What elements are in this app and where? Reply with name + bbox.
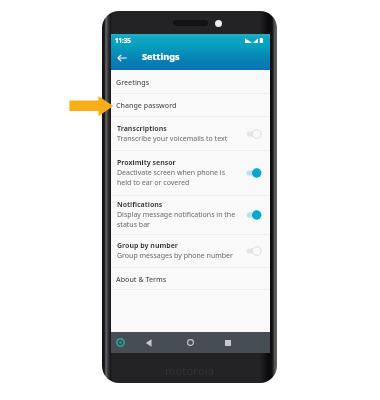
staticText: Group by number [117,241,178,251]
staticText: Settings [142,50,180,63]
staticText: Group messages by phone number [117,251,233,261]
staticText: Display message notifications in the [117,210,236,220]
staticText: About & Terms [116,274,167,284]
staticText: Change password [116,100,177,110]
staticText: Transcriptions [117,124,167,134]
button[interactable]: Back [115,51,128,64]
staticText: status bar [117,220,150,230]
staticText: 11:35 [115,36,131,44]
staticText: held to ear or covered [117,178,190,188]
staticText: Proximity sensor [117,158,176,168]
button[interactable]: Proximity sensor [111,151,270,196]
staticText: motorola [165,363,215,378]
button[interactable]: Notifications [111,196,270,235]
button[interactable]: Group by number [111,235,270,268]
button[interactable]: Home [181,332,199,353]
staticText: Transcribe your voicemails to text [117,134,228,144]
button[interactable]: Greetings [111,71,270,94]
button[interactable]: Transcriptions [111,117,270,151]
button[interactable]: Toggle [246,129,262,139]
button[interactable]: Toggle [246,168,262,178]
button[interactable]: Back [140,332,158,353]
button[interactable]: Recent apps [219,332,237,353]
button[interactable]: Assistant [111,332,129,353]
button[interactable]: Toggle [246,246,262,256]
button[interactable]: Change password [111,94,270,117]
button[interactable]: About & Terms [111,268,270,290]
staticText: Greetings [116,77,150,87]
staticText: Notifications [117,200,163,210]
button[interactable]: Toggle [246,210,262,220]
staticText: Deactivate screen when phone is [117,168,226,178]
